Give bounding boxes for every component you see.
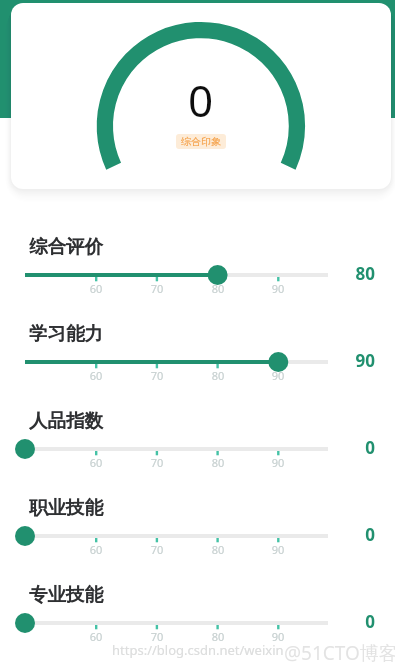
staticText: 90 bbox=[264, 629, 292, 644]
staticText: 0 bbox=[335, 610, 375, 633]
staticText: 80 bbox=[204, 542, 232, 557]
staticText: 70 bbox=[143, 629, 171, 644]
button[interactable]: 综合印象 bbox=[176, 134, 226, 149]
staticText: 60 bbox=[82, 455, 110, 470]
staticText: 综合评价 bbox=[29, 235, 103, 258]
staticText: 60 bbox=[82, 542, 110, 557]
staticText: 80 bbox=[204, 281, 232, 296]
button[interactable]: 综合评价 80 bbox=[0, 228, 395, 315]
staticText: 职业技能 bbox=[29, 496, 103, 519]
staticText: 80 bbox=[204, 455, 232, 470]
button[interactable]: 人品指数 0 bbox=[0, 402, 395, 489]
staticText: 90 bbox=[335, 349, 375, 372]
staticText: 90 bbox=[264, 281, 292, 296]
staticText: 80 bbox=[204, 368, 232, 383]
staticText: 60 bbox=[82, 368, 110, 383]
staticText: @51CTO博客 bbox=[284, 640, 395, 666]
staticText: 80 bbox=[204, 629, 232, 644]
staticText: 0 bbox=[335, 523, 375, 546]
staticText: 专业技能 bbox=[29, 583, 103, 606]
staticText: 70 bbox=[143, 281, 171, 296]
staticText: 90 bbox=[264, 368, 292, 383]
staticText: 70 bbox=[143, 455, 171, 470]
button[interactable]: 学习能力 90 bbox=[0, 315, 395, 402]
button[interactable]: 专业技能 0 bbox=[0, 576, 395, 663]
staticText: 60 bbox=[82, 281, 110, 296]
staticText: 0 bbox=[335, 436, 375, 459]
staticText: 70 bbox=[143, 542, 171, 557]
staticText: 人品指数 bbox=[29, 409, 103, 432]
staticText: 0 bbox=[188, 70, 214, 130]
staticText: https://blog.csdn.net/weixin bbox=[112, 641, 284, 659]
staticText: 90 bbox=[264, 542, 292, 557]
staticText: 学习能力 bbox=[29, 322, 103, 345]
staticText: 综合印象 bbox=[181, 135, 221, 148]
staticText: 学习能力 bbox=[29, 322, 103, 345]
staticText: 职业技能 bbox=[29, 496, 103, 519]
staticText: 90 bbox=[264, 455, 292, 470]
button[interactable]: 职业技能 0 bbox=[0, 489, 395, 576]
staticText: 80 bbox=[335, 262, 375, 285]
staticText: 综合评价 bbox=[29, 235, 103, 258]
staticText: 60 bbox=[82, 629, 110, 644]
staticText: 专业技能 bbox=[29, 583, 103, 606]
staticText: 70 bbox=[143, 368, 171, 383]
staticText: 人品指数 bbox=[29, 409, 103, 432]
